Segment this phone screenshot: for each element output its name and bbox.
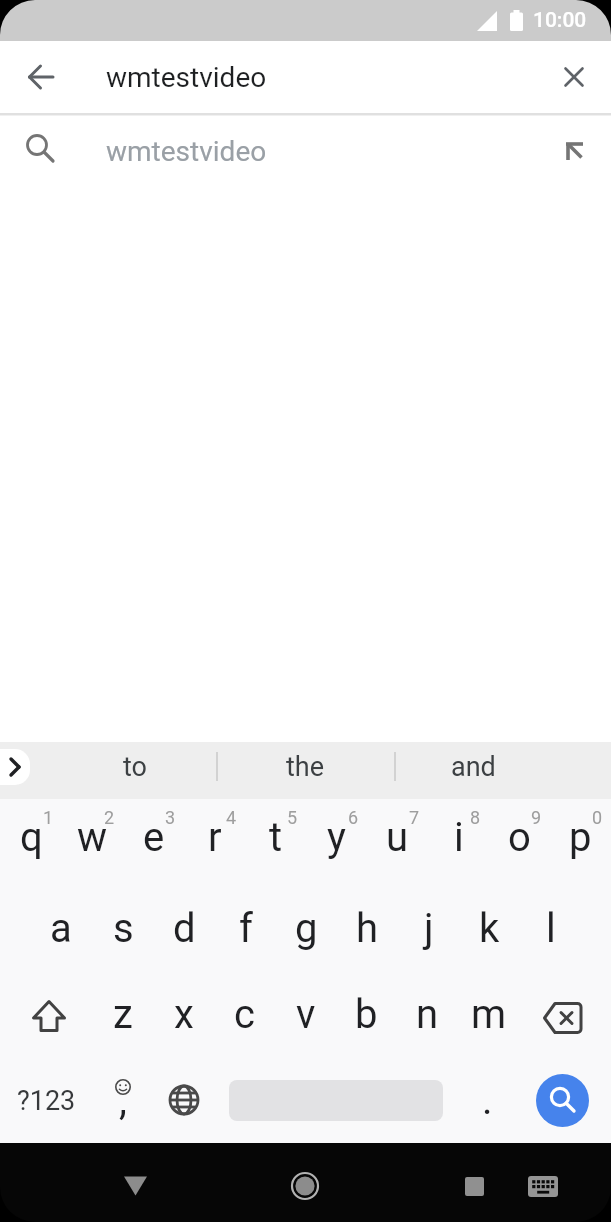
staticText: o: [508, 814, 531, 861]
staticText: d: [173, 905, 196, 952]
button[interactable]: to: [95, 742, 175, 799]
button[interactable]: f: [215, 885, 276, 971]
button[interactable]: [515, 1158, 571, 1214]
button[interactable]: [14, 50, 68, 104]
button[interactable]: i: [428, 799, 489, 885]
staticText: s: [113, 905, 134, 952]
button[interactable]: [0, 971, 92, 1057]
button[interactable]: [277, 1158, 333, 1214]
staticText: c: [234, 991, 255, 1038]
staticText: t: [269, 814, 283, 861]
button[interactable]: p: [550, 799, 611, 885]
button[interactable]: [0, 749, 30, 785]
button[interactable]: d: [154, 885, 215, 971]
staticText: f: [239, 905, 253, 952]
staticText: v: [296, 991, 316, 1038]
button[interactable]: c: [214, 971, 275, 1057]
staticText: g: [295, 905, 318, 952]
button[interactable]: b: [336, 971, 397, 1057]
staticText: x: [174, 991, 194, 1038]
button[interactable]: the: [260, 742, 350, 799]
button[interactable]: v: [275, 971, 336, 1057]
button[interactable]: [214, 1057, 457, 1143]
button[interactable]: k: [459, 885, 520, 971]
button[interactable]: .: [457, 1057, 518, 1143]
button[interactable]: x: [153, 971, 214, 1057]
staticText: e: [143, 814, 165, 861]
button[interactable]: [536, 1074, 589, 1127]
staticText: z: [113, 991, 133, 1038]
button[interactable]: o: [489, 799, 550, 885]
staticText: u: [386, 814, 409, 861]
staticText: and: [451, 751, 496, 783]
button[interactable]: [153, 1057, 214, 1143]
staticText: .: [482, 1077, 493, 1124]
button[interactable]: [555, 131, 595, 171]
button[interactable]: ,: [92, 1057, 153, 1143]
staticText: 6: [348, 807, 359, 828]
staticText: 0: [592, 807, 603, 828]
staticText: q: [20, 814, 43, 861]
button[interactable]: w: [62, 799, 123, 885]
button[interactable]: t: [245, 799, 306, 885]
button[interactable]: m: [458, 971, 519, 1057]
staticText: y: [327, 814, 346, 861]
staticText: 2: [104, 807, 115, 828]
staticText: 4: [226, 807, 237, 828]
staticText: m: [471, 991, 507, 1038]
staticText: r: [208, 814, 222, 861]
staticText: 1: [43, 807, 54, 828]
staticText: j: [424, 905, 434, 952]
staticText: 3: [165, 807, 176, 828]
staticText: h: [356, 905, 379, 952]
button[interactable]: s: [92, 885, 154, 971]
staticText: 10:00: [533, 8, 587, 33]
staticText: 7: [409, 807, 420, 828]
staticText: to: [123, 751, 147, 783]
staticText: k: [479, 905, 500, 952]
button[interactable]: h: [337, 885, 398, 971]
staticText: i: [454, 814, 464, 861]
staticText: n: [416, 991, 439, 1038]
staticText: ,: [119, 1077, 127, 1124]
button[interactable]: [549, 52, 599, 102]
button[interactable]: j: [398, 885, 459, 971]
staticText: b: [355, 991, 378, 1038]
staticText: wmtestvideo: [106, 61, 267, 94]
button[interactable]: y: [306, 799, 367, 885]
button[interactable]: r: [184, 799, 245, 885]
staticText: p: [569, 814, 592, 861]
button[interactable]: a: [30, 885, 92, 971]
staticText: wmtestvideo: [106, 135, 267, 168]
button[interactable]: n: [397, 971, 458, 1057]
staticText: a: [50, 905, 72, 952]
button[interactable]: [446, 1158, 502, 1214]
button[interactable]: q: [0, 799, 62, 885]
staticText: the: [286, 751, 325, 783]
staticText: 8: [470, 807, 481, 828]
button[interactable]: z: [92, 971, 153, 1057]
button[interactable]: [107, 1158, 163, 1214]
button[interactable]: g: [276, 885, 337, 971]
button[interactable]: [519, 971, 611, 1057]
button[interactable]: wmtestvideo: [0, 116, 611, 186]
staticText: l: [546, 905, 556, 952]
staticText: ?123: [17, 1085, 76, 1117]
staticText: w: [77, 814, 108, 861]
button[interactable]: e: [123, 799, 184, 885]
staticText: 9: [531, 807, 542, 828]
button[interactable]: l: [520, 885, 581, 971]
button[interactable]: and: [428, 742, 518, 799]
staticText: 5: [287, 807, 298, 828]
button[interactable]: u: [367, 799, 428, 885]
button[interactable]: ?123: [0, 1057, 92, 1143]
